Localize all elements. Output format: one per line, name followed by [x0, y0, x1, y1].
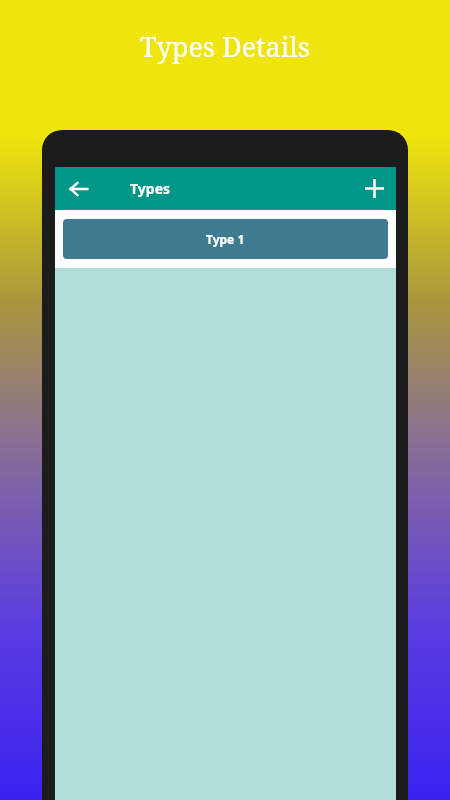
staticText: Type 1: [206, 231, 245, 247]
button[interactable]: Add: [353, 167, 396, 210]
button[interactable]: Back: [57, 167, 101, 210]
button[interactable]: Type 1: [63, 219, 388, 259]
staticText: Types: [130, 179, 171, 198]
staticText: Types Details: [140, 28, 310, 65]
